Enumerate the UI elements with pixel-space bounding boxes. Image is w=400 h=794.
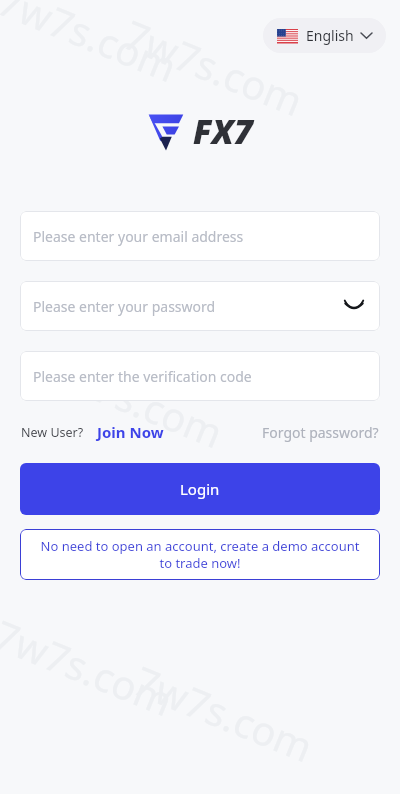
staticText: Join Now [97,422,164,442]
staticText: 7w7s.com [37,339,231,459]
button[interactable]: Please enter your email address [20,211,380,261]
button[interactable]: Please enter your password [20,281,380,331]
staticText: FX7 [193,109,253,154]
button[interactable]: Login [20,463,380,515]
button[interactable]: No need to open an account, create a dem… [20,529,380,580]
staticText: Please enter your password [33,297,216,316]
staticText: New User? [21,424,84,441]
staticText: Forgot password? [262,423,379,442]
staticText: No need to open an account, create a dem… [34,537,366,572]
button[interactable]: Forgot password? [262,423,379,442]
staticText: Please enter your email address [33,227,244,246]
button[interactable]: Show password [338,290,370,322]
button[interactable]: English [263,18,386,53]
staticText: Login [180,479,220,499]
button[interactable]: Join Now [97,422,164,442]
staticText: Please enter the verification code [33,367,252,386]
button[interactable]: Please enter the verification code [20,351,380,401]
staticText: English [306,26,354,45]
staticText: 7w7s.com [117,7,311,127]
